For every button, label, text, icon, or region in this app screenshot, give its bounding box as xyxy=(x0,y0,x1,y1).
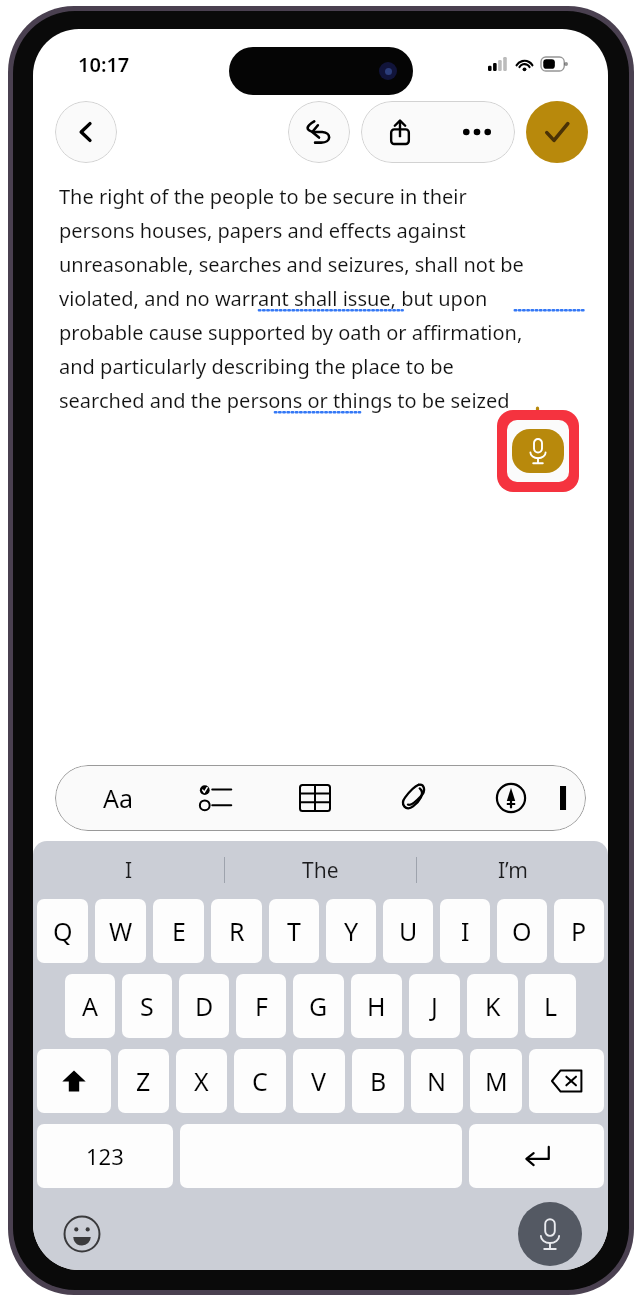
button[interactable]: W xyxy=(95,899,146,963)
button[interactable]: I xyxy=(33,841,224,899)
button[interactable]: I’m xyxy=(417,841,608,899)
staticText: X xyxy=(194,1064,209,1098)
staticText: A xyxy=(82,989,98,1023)
staticText: F xyxy=(255,989,268,1023)
staticText: I xyxy=(125,856,133,885)
staticText: L xyxy=(544,989,558,1023)
button[interactable]: Emoji xyxy=(61,1213,103,1255)
button[interactable]: S xyxy=(122,974,172,1038)
staticText: persons houses, papers and effects again… xyxy=(59,217,466,244)
staticText: E xyxy=(172,914,186,948)
button[interactable]: Y xyxy=(326,899,376,963)
button[interactable]: H xyxy=(351,974,402,1038)
button[interactable]: Done xyxy=(526,101,588,163)
staticText: K xyxy=(485,989,501,1023)
button[interactable]: Return xyxy=(469,1124,604,1188)
button[interactable]: Dictate xyxy=(518,1202,582,1266)
button[interactable]: D xyxy=(179,974,229,1038)
staticText: O xyxy=(512,914,532,948)
staticText: I’m xyxy=(498,856,528,885)
staticText: P xyxy=(571,914,587,948)
button[interactable]: V xyxy=(293,1049,345,1113)
button[interactable]: The xyxy=(225,841,416,899)
button[interactable]: C xyxy=(234,1049,286,1113)
staticText: violated, and no warrant shall issue, bu… xyxy=(59,285,488,312)
button[interactable]: M xyxy=(470,1049,522,1113)
staticText: 10:17 xyxy=(78,51,130,78)
button[interactable]: Markup xyxy=(462,765,560,831)
staticText: The xyxy=(302,856,339,885)
button[interactable]: Table xyxy=(266,765,364,831)
button[interactable]: L xyxy=(525,974,576,1038)
staticText: N xyxy=(427,1064,447,1098)
button[interactable]: B xyxy=(352,1049,404,1113)
staticText: Aa xyxy=(103,781,134,815)
button[interactable]: U xyxy=(383,899,433,963)
staticText: searched and the persons or things to be… xyxy=(59,387,510,414)
button[interactable]: Dictation xyxy=(512,429,564,473)
button[interactable]: F xyxy=(236,974,286,1038)
staticText: and particularly describing the place to… xyxy=(59,353,454,380)
button[interactable]: Back xyxy=(55,101,117,163)
button[interactable]: O xyxy=(497,899,547,963)
button[interactable]: Shift xyxy=(37,1049,111,1113)
staticText: J xyxy=(431,989,438,1023)
staticText: I xyxy=(461,914,470,948)
button[interactable]: R xyxy=(211,899,262,963)
button[interactable]: P xyxy=(554,899,604,963)
staticText: R xyxy=(229,914,245,948)
staticText: C xyxy=(252,1064,268,1098)
button[interactable]: Z xyxy=(118,1049,169,1113)
button[interactable]: K xyxy=(467,974,518,1038)
staticText: M xyxy=(485,1064,508,1098)
button[interactable]: Undo xyxy=(288,101,350,163)
button[interactable]: 123 xyxy=(37,1124,173,1188)
staticText: probable cause supported by oath or affi… xyxy=(59,319,523,346)
staticText: S xyxy=(140,989,154,1023)
button[interactable]: N xyxy=(411,1049,463,1113)
button[interactable]: Share xyxy=(361,101,438,163)
staticText: V xyxy=(311,1064,327,1098)
button[interactable]: More formatting xyxy=(560,765,586,831)
button[interactable]: More options xyxy=(438,101,515,163)
button[interactable]: E xyxy=(153,899,204,963)
button[interactable]: Checklist xyxy=(168,765,266,831)
button[interactable]: Q xyxy=(37,899,88,963)
staticText: T xyxy=(287,914,301,948)
button[interactable]: X xyxy=(176,1049,227,1113)
staticText: G xyxy=(309,989,328,1023)
staticText: U xyxy=(399,914,418,948)
button[interactable]: I xyxy=(440,899,490,963)
staticText: The right of the people to be secure in … xyxy=(59,183,467,210)
button[interactable]: T xyxy=(269,899,319,963)
staticText: Z xyxy=(136,1064,151,1098)
staticText: Y xyxy=(344,914,359,948)
staticText: unreasonable, searches and seizures, sha… xyxy=(59,251,524,278)
staticText: Q xyxy=(53,914,73,948)
button[interactable]: G xyxy=(293,974,344,1038)
staticText: H xyxy=(367,989,386,1023)
staticText: B xyxy=(370,1064,387,1098)
staticText: 123 xyxy=(86,1141,124,1171)
button[interactable]: A xyxy=(65,974,115,1038)
staticText: W xyxy=(109,914,133,948)
staticText: D xyxy=(195,989,214,1023)
button[interactable]: Backspace xyxy=(529,1049,604,1113)
button[interactable]: J xyxy=(409,974,460,1038)
button[interactable]: Attach xyxy=(364,765,462,831)
button[interactable]: Aa xyxy=(69,765,168,831)
